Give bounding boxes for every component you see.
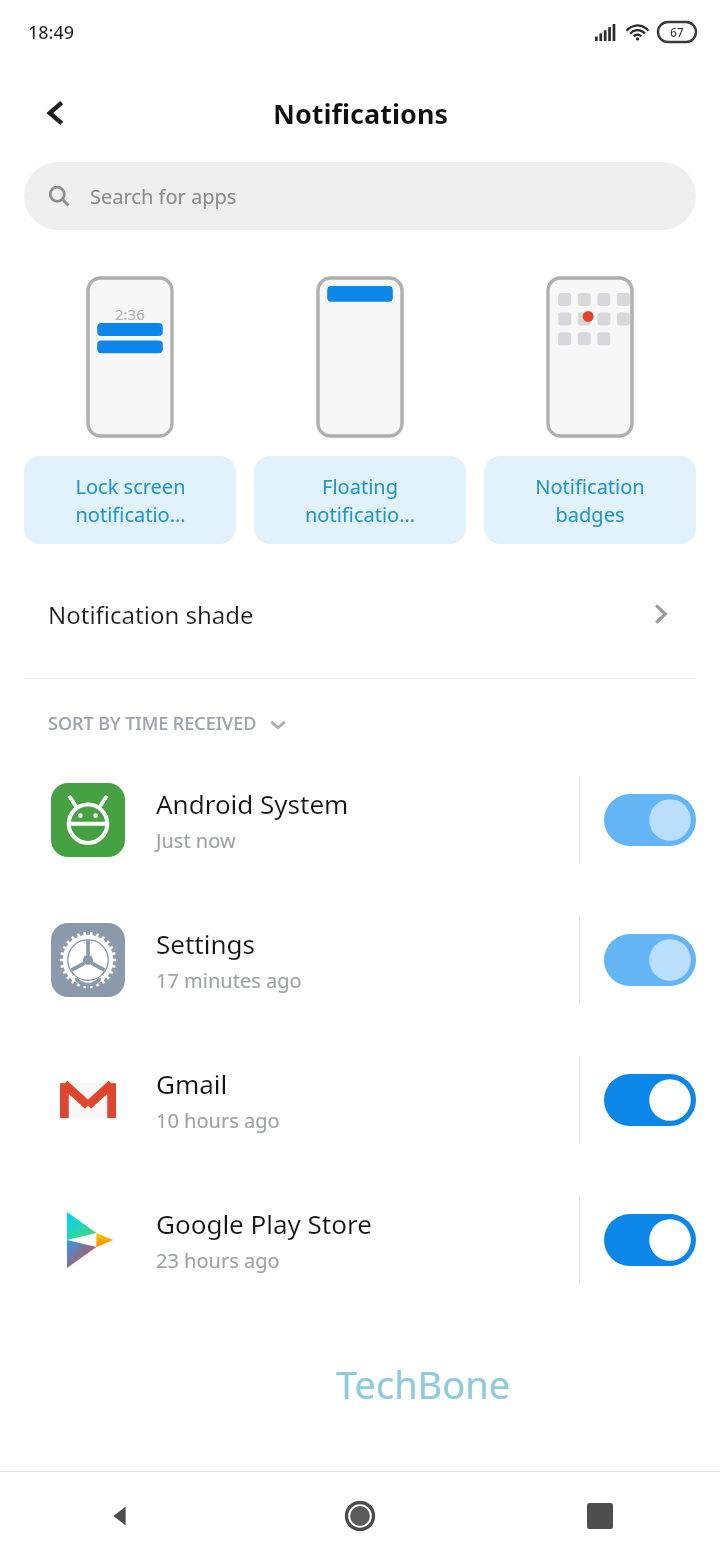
button[interactable]: Settings [0, 890, 720, 1030]
staticText: Gmail [156, 1066, 228, 1101]
button[interactable]: Home [240, 1472, 480, 1560]
button[interactable]: Gmail [0, 1030, 720, 1170]
staticText: TechBone [336, 1358, 511, 1410]
button[interactable]: Notification shade [0, 578, 720, 650]
staticText: Notifications [273, 95, 448, 132]
staticText: Notification badges [535, 473, 645, 528]
button[interactable]: Toggle notifications for Google Play Sto… [580, 1170, 720, 1310]
staticText: Settings [156, 926, 255, 961]
staticText: Lock screen notificatio… [75, 473, 186, 528]
staticText: 18:49 [28, 20, 75, 45]
staticText: Notification shade [48, 598, 254, 631]
staticText: SORT BY TIME RECEIVED [48, 711, 257, 736]
button[interactable]: Toggle notifications for Android System [580, 750, 720, 890]
button[interactable]: Toggle notifications for Gmail [580, 1030, 720, 1170]
button[interactable]: Android System [0, 750, 720, 890]
button[interactable]: Lock screen notificatio… [24, 456, 236, 544]
button[interactable]: Toggle notifications for Settings [580, 890, 720, 1030]
button[interactable]: Recents [480, 1472, 720, 1560]
staticText: 10 hours ago [156, 1107, 280, 1134]
staticText: Google Play Store [156, 1206, 372, 1241]
button[interactable]: Notification badges [484, 456, 696, 544]
staticText: 23 hours ago [156, 1247, 280, 1274]
button[interactable]: SORT BY TIME RECEIVED [0, 701, 303, 746]
button[interactable]: Google Play Store [0, 1170, 720, 1310]
staticText: Android System [156, 786, 349, 821]
staticText: Just now [156, 827, 236, 854]
button[interactable]: Back [28, 85, 84, 141]
button[interactable]: Search for apps [24, 162, 696, 230]
button[interactable]: Back [0, 1472, 240, 1560]
button[interactable]: Floating notificatio… [254, 456, 466, 544]
staticText: 2:36 [115, 304, 145, 324]
staticText: 17 minutes ago [156, 967, 302, 994]
staticText: Floating notificatio… [305, 473, 415, 528]
staticText: Search for apps [90, 183, 237, 210]
staticText: 67 [670, 24, 684, 40]
